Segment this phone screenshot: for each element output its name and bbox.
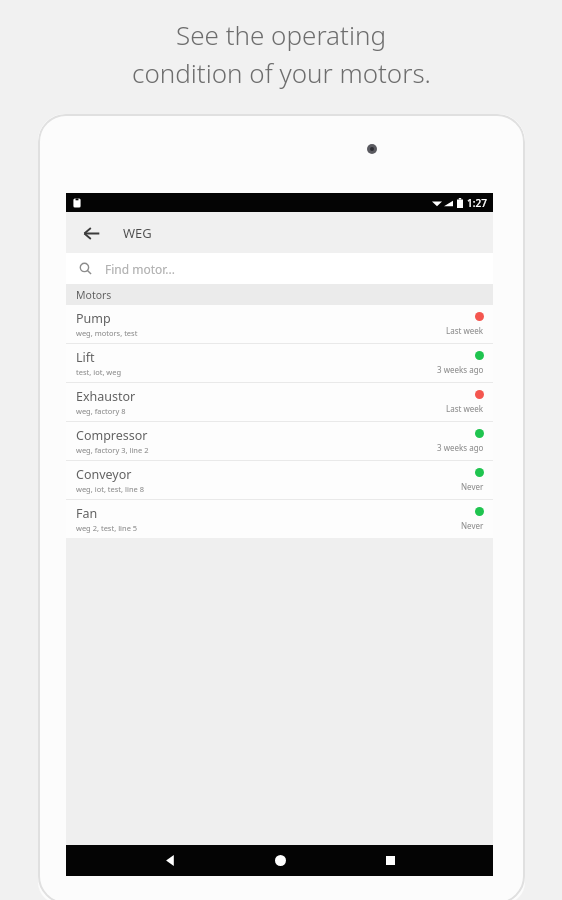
button[interactable]: Fan <box>66 500 493 538</box>
staticText: Fan <box>76 505 98 522</box>
button[interactable]: Exhaustor <box>66 383 493 421</box>
button[interactable]: Conveyor <box>66 461 493 499</box>
staticText: Last week <box>446 403 484 414</box>
staticText: Lift <box>76 349 95 366</box>
staticText: Compressor <box>76 427 148 444</box>
staticText: WEG <box>123 224 152 242</box>
button[interactable]: Lift <box>66 344 493 382</box>
staticText: 3 weeks ago <box>437 442 484 453</box>
staticText: Last week <box>446 325 484 336</box>
staticText: weg, motors, test <box>76 328 138 338</box>
button[interactable]: Back <box>75 217 107 249</box>
button[interactable]: Back <box>115 845 225 876</box>
staticText: test, iot, weg <box>76 367 122 377</box>
staticText: weg 2, test, line 5 <box>76 523 138 533</box>
staticText: weg, factory 3, line 2 <box>76 445 149 455</box>
staticText: Never <box>461 520 484 531</box>
staticText: Conveyor <box>76 466 132 483</box>
staticText: Exhaustor <box>76 388 136 405</box>
staticText: 3 weeks ago <box>437 364 484 375</box>
staticText: Never <box>461 481 484 492</box>
button[interactable]: Pump <box>66 305 493 343</box>
staticText: condition of your motors. <box>132 55 431 90</box>
staticText: See the operating <box>176 17 386 52</box>
button[interactable]: Find motor... <box>66 253 493 284</box>
button[interactable]: Home <box>225 845 335 876</box>
staticText: weg, iot, test, line 8 <box>76 484 145 494</box>
button[interactable]: Compressor <box>66 422 493 460</box>
staticText: Find motor... <box>105 261 175 277</box>
staticText: 1:27 <box>467 196 487 210</box>
staticText: weg, factory 8 <box>76 406 126 416</box>
staticText: Motors <box>76 288 112 302</box>
staticText: Pump <box>76 310 111 327</box>
button[interactable]: Recent apps <box>335 845 445 876</box>
